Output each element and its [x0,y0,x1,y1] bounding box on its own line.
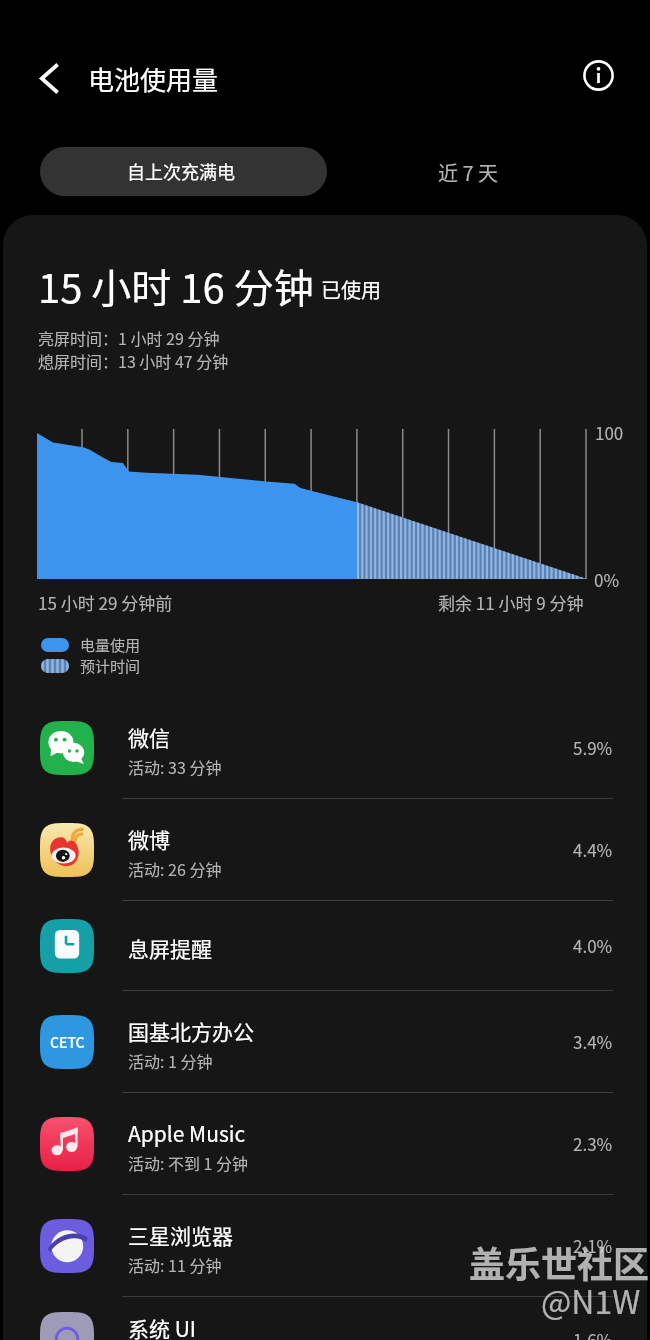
button[interactable]: 息屏提醒 [3,901,647,990]
staticText: 2.1% [573,1233,613,1258]
button[interactable]: 微信 [3,697,647,798]
button[interactable]: 系统 UI [3,1297,647,1340]
staticText: 15 小时 29 分钟前 [38,590,173,615]
staticText: 电池使用量 [88,60,219,98]
staticText: Apple Music [128,1118,246,1148]
staticText: 剩余 11 小时 9 分钟 [438,590,584,615]
staticText: 盖乐世社区 [469,1236,650,1288]
button[interactable]: 自上次充满电 [40,147,327,196]
staticText: 熄屏时间：13 小时 47 分钟 [38,349,229,372]
staticText: 近 7 天 [438,158,499,187]
staticText: 活动: 11 分钟 [128,1253,222,1276]
staticText: 4.4% [573,837,613,862]
staticText: @N1W [541,1277,641,1323]
staticText: CETC [50,1032,85,1052]
button[interactable]: Information [570,47,626,103]
staticText: 已使用 [321,275,381,304]
staticText: 自上次充满电 [127,158,235,184]
staticText: 息屏提醒 [128,933,212,963]
staticText: 国基北方办公 [128,1016,254,1046]
button[interactable]: Back [21,50,77,106]
button[interactable]: CETC [3,991,647,1092]
staticText: 100 [595,420,624,445]
staticText: 0% [594,567,620,592]
staticText: 1.6% [573,1327,613,1340]
staticText: 微博 [128,824,170,854]
staticText: 15 小时 16 分钟 [38,257,314,315]
staticText: 亮屏时间：1 小时 29 分钟 [38,326,220,349]
button[interactable]: 微博 [3,799,647,900]
staticText: 预计时间 [80,655,141,677]
staticText: 电量使用 [80,634,141,656]
button[interactable]: Apple Music [3,1093,647,1194]
staticText: 微信 [128,722,170,752]
button[interactable]: 三星浏览器 [3,1195,647,1296]
staticText: 活动: 不到 1 分钟 [128,1151,249,1174]
staticText: 4.0% [573,933,613,958]
staticText: 5.9% [573,735,613,760]
staticText: 三星浏览器 [128,1220,233,1250]
button[interactable]: 近 7 天 [327,147,614,196]
staticText: 活动: 33 分钟 [128,755,222,778]
staticText: 活动: 26 分钟 [128,857,222,880]
staticText: 系统 UI [128,1313,196,1340]
staticText: 2.3% [573,1131,613,1156]
staticText: 活动: 1 分钟 [128,1049,213,1072]
staticText: 3.4% [573,1029,613,1054]
